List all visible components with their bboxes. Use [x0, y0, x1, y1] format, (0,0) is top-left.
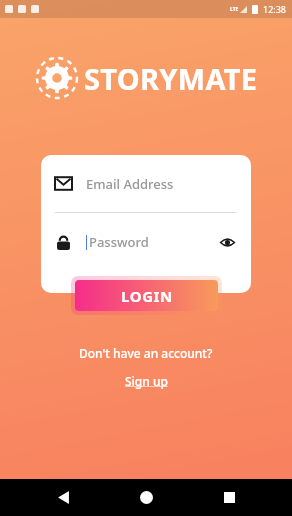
button[interactable]: Back	[43, 479, 83, 516]
staticText: Email Address	[86, 175, 174, 193]
staticText: 12:38	[263, 3, 287, 15]
staticText: Sign up	[125, 373, 168, 389]
button[interactable]: Password	[41, 213, 251, 271]
button[interactable]: Show password	[217, 232, 237, 252]
staticText: Don't have an account?	[79, 345, 213, 361]
staticText: STORYMATE	[84, 59, 258, 98]
button[interactable]: Recent apps	[209, 479, 249, 516]
button[interactable]: Sign up	[119, 371, 174, 391]
button[interactable]: LOGIN	[75, 280, 218, 311]
staticText: LTE	[230, 6, 239, 13]
button[interactable]: Email Address	[41, 155, 251, 212]
staticText: LOGIN	[121, 286, 173, 306]
staticText: Password	[89, 233, 149, 251]
button[interactable]: Home	[126, 479, 166, 516]
